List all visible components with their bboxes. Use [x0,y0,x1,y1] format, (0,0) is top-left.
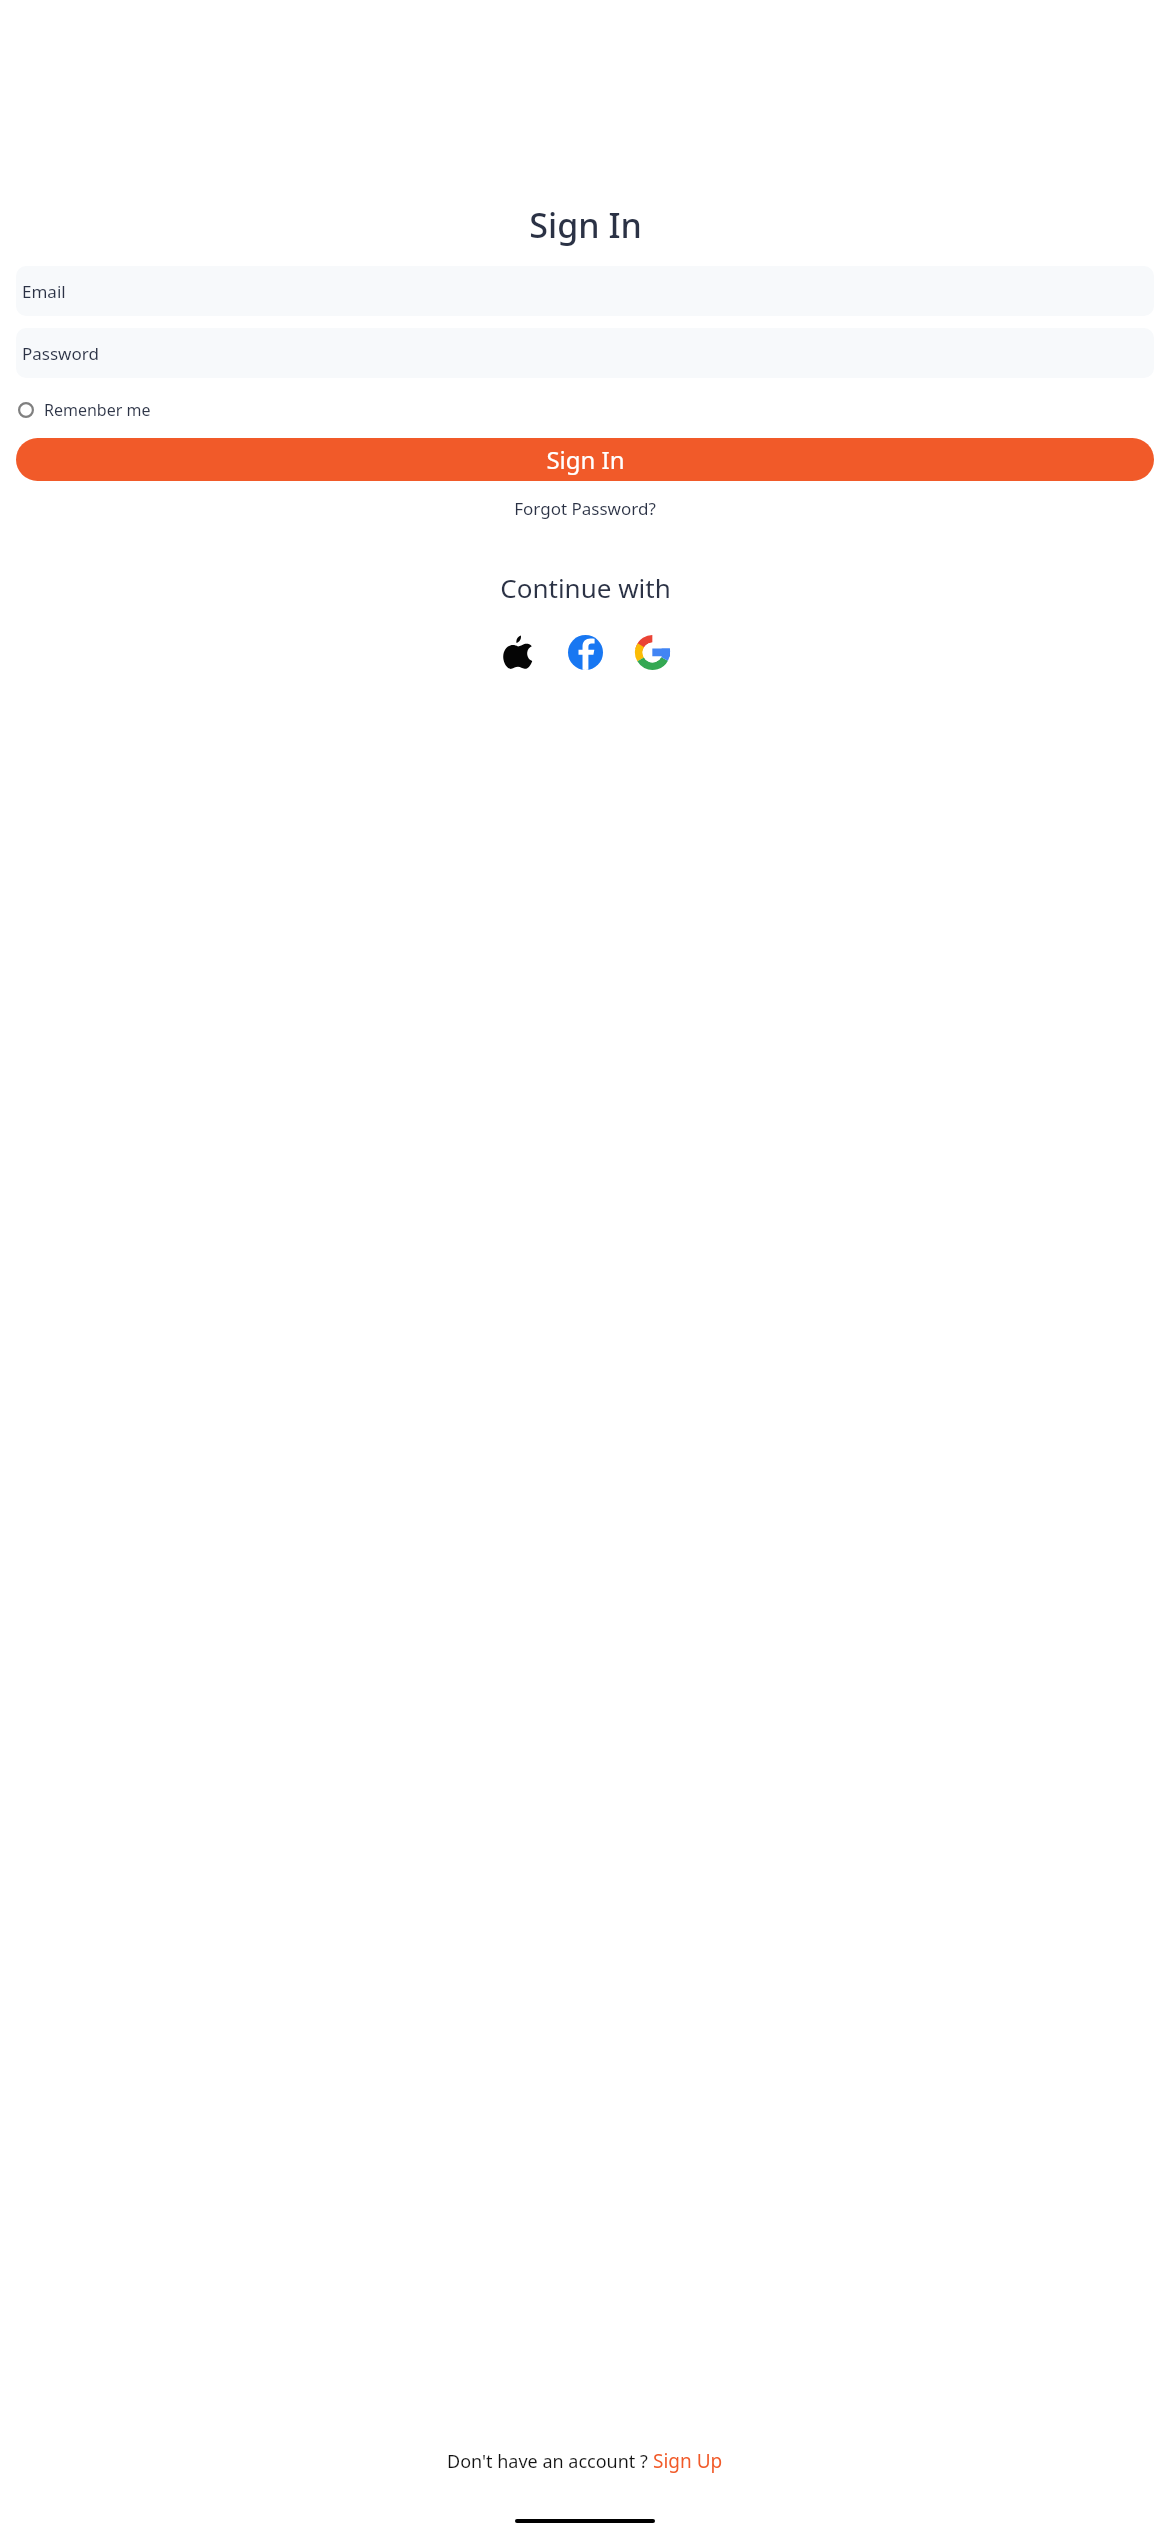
button[interactable]: Sign In [16,438,1154,481]
staticText: Password [22,342,99,365]
staticText: Continue with [500,570,671,605]
button[interactable]: Continue with Apple [496,630,540,674]
staticText: Don't have an account ? [447,2449,648,2474]
button[interactable]: Continue with Facebook [563,630,607,674]
button[interactable]: Remenber me [16,395,153,425]
staticText: Forgot Password? [514,497,656,520]
button[interactable]: Sign Up [653,2448,723,2474]
button[interactable]: Password [16,328,1154,378]
button[interactable]: Email [16,266,1154,316]
staticText: Remenber me [44,399,151,421]
button[interactable]: Continue with Google [630,630,674,674]
staticText: Sign In [529,202,642,248]
staticText: Sign In [546,443,625,476]
staticText: Email [22,280,66,303]
button[interactable]: Forgot Password? [506,493,664,524]
staticText: Sign Up [653,2448,723,2474]
